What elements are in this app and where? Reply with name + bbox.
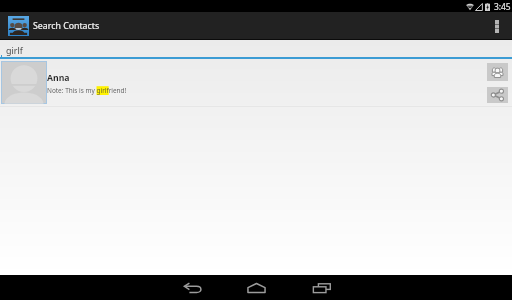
staticText: 3:45 — [494, 1, 511, 12]
button[interactable]: More options — [488, 12, 512, 40]
button[interactable]: Anna — [0, 59, 512, 107]
button[interactable]: Share — [487, 87, 508, 103]
staticText: Anna — [47, 72, 70, 84]
staticText: Search Contacts — [33, 20, 100, 32]
button[interactable]: girlf — [0, 40, 512, 59]
button[interactable]: Select contacts group — [487, 63, 508, 81]
button[interactable]: Home — [232, 275, 280, 300]
button[interactable]: Back — [169, 275, 217, 300]
button[interactable]: Recent apps — [298, 275, 346, 300]
button[interactable]: Search Contacts app icon — [8, 16, 29, 36]
staticText: girlf — [6, 44, 23, 56]
staticText: Note: This is my girlfriend! — [47, 86, 127, 95]
